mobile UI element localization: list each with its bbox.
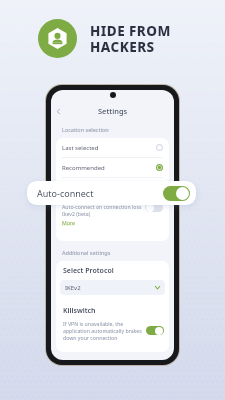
button[interactable]: IKEv2 <box>60 280 165 295</box>
staticText: Ikev2 (beta) <box>62 210 91 217</box>
button[interactable]: More <box>62 219 75 226</box>
staticText: Last selected <box>62 144 156 152</box>
staticText: Recommended <box>62 164 156 172</box>
staticText: Additional settings <box>62 249 111 256</box>
staticText: Auto-connect <box>37 187 94 199</box>
staticText: Killswitch <box>63 306 96 316</box>
staticText: Auto-connect on connection loss <box>62 203 142 210</box>
button[interactable]: Toggle off <box>145 203 163 212</box>
staticText: Location selection <box>62 126 109 133</box>
staticText: If VPN is unavailable, the application a… <box>63 320 146 341</box>
staticText: IKEv2 <box>65 284 81 292</box>
button[interactable]: Auto-connect <box>27 181 196 205</box>
button[interactable]: Auto-connect <box>56 178 169 197</box>
button[interactable]: Toggle on <box>146 326 164 335</box>
staticText: Auto-connect <box>62 184 145 192</box>
staticText: HIDE FROM HACKERS <box>90 22 171 56</box>
staticText: Settings <box>98 106 128 116</box>
button[interactable]: Last selected <box>56 138 169 157</box>
button[interactable]: Back <box>51 104 65 118</box>
button[interactable]: Recommended <box>56 158 169 177</box>
staticText: Select Protocol <box>63 266 114 276</box>
